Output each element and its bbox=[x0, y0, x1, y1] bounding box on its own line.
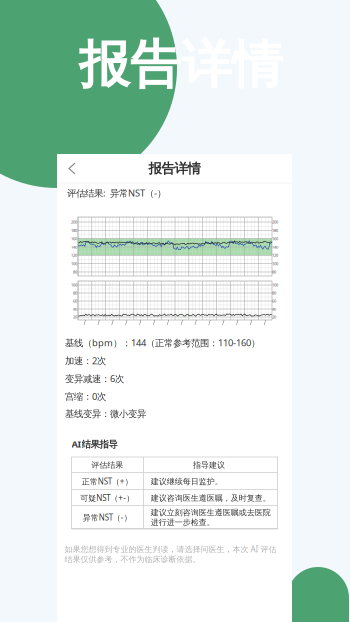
staticText: 120 bbox=[71, 253, 77, 258]
staticText: 60 bbox=[73, 298, 77, 304]
staticText: 140 bbox=[71, 244, 77, 250]
staticText: 宫缩：0次 bbox=[65, 390, 106, 403]
staticText: 80 bbox=[272, 290, 276, 296]
staticText: 100 bbox=[272, 282, 278, 288]
staticText: 40 bbox=[272, 306, 276, 312]
staticText: 基线变异：微小变异 bbox=[65, 408, 146, 420]
staticText: 异常NST（-） bbox=[83, 512, 132, 523]
staticText: 100 bbox=[272, 261, 278, 266]
staticText: 100 bbox=[71, 261, 77, 266]
staticText: 变异减速：6次 bbox=[65, 372, 124, 385]
staticText: 正常NST（+） bbox=[82, 476, 133, 487]
staticText: 160 bbox=[272, 236, 278, 241]
staticText: 180 bbox=[71, 228, 77, 233]
staticText: 40 bbox=[73, 306, 77, 312]
button[interactable]: Back bbox=[57, 154, 89, 183]
staticText: 评估结果: 异常NST（-） bbox=[67, 187, 166, 199]
staticText: 建议咨询医生遵医嘱，及时复查。 bbox=[151, 493, 271, 503]
staticText: 140 bbox=[272, 244, 278, 250]
staticText: 80 bbox=[272, 269, 276, 275]
staticText: 加速：2次 bbox=[65, 354, 106, 367]
staticText: 200 bbox=[272, 219, 278, 225]
staticText: 可疑NST（+-） bbox=[80, 493, 134, 503]
staticText: 200 bbox=[71, 219, 77, 225]
staticText: 60 bbox=[272, 298, 276, 304]
staticText: 报告详情 bbox=[148, 160, 200, 177]
staticText: 80 bbox=[73, 269, 77, 275]
staticText: 报告详情 bbox=[79, 34, 283, 96]
staticText: 基线（bpm）：144（正常参考范围：110-160） bbox=[65, 336, 260, 349]
staticText: 评估结果 bbox=[91, 460, 123, 470]
staticText: 建议继续每日监护。 bbox=[151, 477, 223, 486]
staticText: 180 bbox=[272, 228, 278, 233]
staticText: 20 bbox=[272, 314, 276, 320]
staticText: 如果您想得到专业的医生判读，请选择问医生，本次 AI 评估结果仅供参考，不作为临… bbox=[64, 544, 276, 564]
staticText: 20 bbox=[73, 314, 77, 320]
staticText: 100 bbox=[71, 282, 77, 288]
staticText: 建议立刻咨询医生遵医嘱或去医院进行进一步检查。 bbox=[151, 508, 271, 527]
staticText: AI结果指导 bbox=[71, 438, 117, 450]
staticText: 120 bbox=[272, 253, 278, 258]
staticText: 160 bbox=[71, 236, 77, 241]
staticText: 80 bbox=[73, 290, 77, 296]
staticText: 指导建议 bbox=[193, 460, 225, 470]
